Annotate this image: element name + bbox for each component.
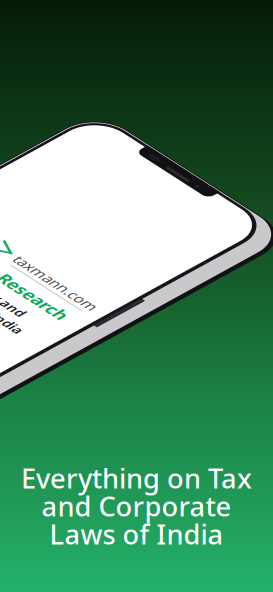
staticText: taxmann.com bbox=[99, 178, 194, 198]
staticText: Everything on Tax bbox=[21, 459, 252, 496]
staticText: Laws of India bbox=[49, 515, 223, 552]
staticText: Corporate Laws of India bbox=[22, 247, 177, 265]
staticText: and Corporate bbox=[41, 487, 231, 524]
